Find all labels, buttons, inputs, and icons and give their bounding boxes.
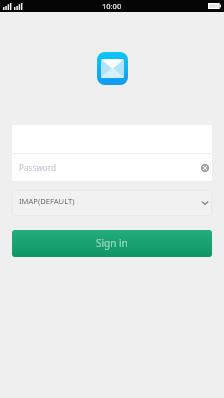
other: Expand protocol <box>201 199 209 207</box>
button[interactable]: Clear password <box>198 161 211 174</box>
staticText: IMAP(DEFAULT) <box>19 196 75 206</box>
staticText: Sign in <box>96 236 128 250</box>
staticText: 10:00 <box>102 1 122 11</box>
button[interactable]: Sign in <box>12 230 212 257</box>
staticText: Password <box>19 162 57 173</box>
button[interactable]: Password <box>12 154 212 181</box>
button[interactable]: IMAP(DEFAULT) <box>12 190 212 216</box>
